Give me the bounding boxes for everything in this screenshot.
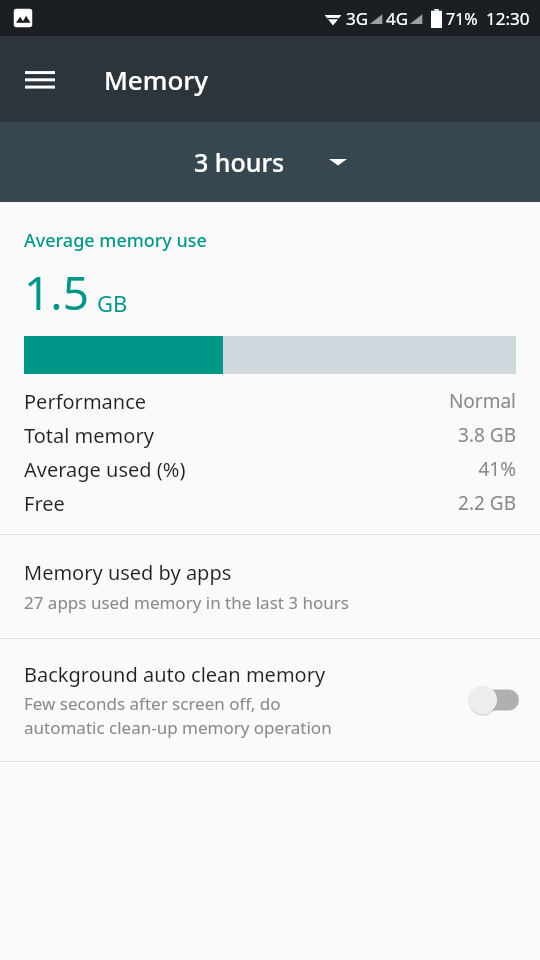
staticText: 71% — [446, 8, 478, 30]
button[interactable]: Background auto clean memory toggle — [468, 683, 520, 717]
staticText: Free — [24, 490, 65, 517]
staticText: Total memory — [24, 422, 154, 449]
staticText: 4G — [386, 7, 409, 30]
button[interactable]: Memory used by apps — [0, 535, 540, 638]
staticText: Performance — [24, 388, 147, 415]
staticText: Background auto clean memory — [24, 661, 326, 688]
staticText: 3G — [346, 7, 369, 30]
staticText: Average memory use — [24, 228, 207, 253]
staticText: 41% — [478, 456, 516, 482]
staticText: Normal — [448, 388, 516, 414]
staticText: Few seconds after screen off, do automat… — [24, 692, 332, 739]
staticText: Memory — [104, 62, 209, 97]
button[interactable]: Background auto clean memory — [0, 639, 540, 761]
staticText: 2.2 GB — [458, 490, 516, 516]
staticText: 3.8 GB — [458, 422, 516, 448]
staticText: 12:30 — [486, 7, 530, 30]
staticText: Memory used by apps — [24, 559, 232, 586]
staticText: GB — [97, 288, 128, 318]
staticText: 1.5 — [24, 261, 89, 324]
button[interactable]: Open navigation menu — [12, 51, 68, 107]
staticText: 3 hours — [194, 145, 285, 179]
button[interactable]: 3 hours — [194, 145, 347, 179]
staticText: 27 apps used memory in the last 3 hours — [24, 591, 349, 614]
staticText: Average used (%) — [24, 456, 186, 483]
